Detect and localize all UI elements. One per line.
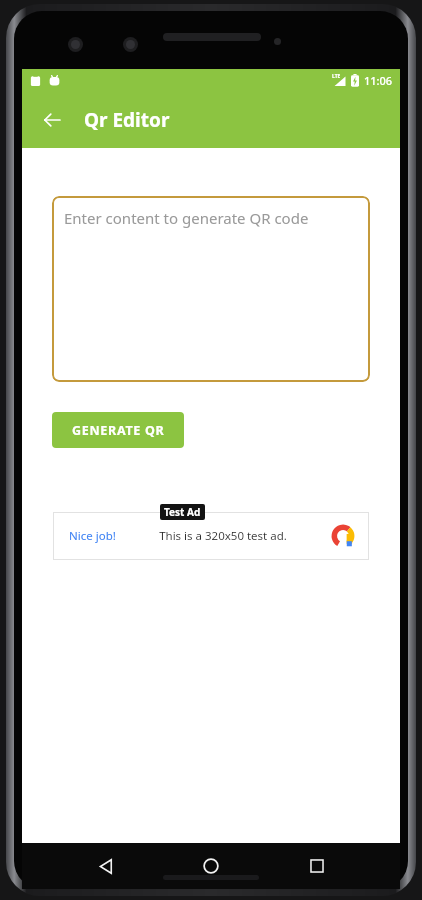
staticText: GENERATE QR — [72, 422, 165, 439]
staticText: Test Ad — [164, 505, 201, 519]
button[interactable]: GENERATE QR — [52, 412, 184, 448]
button[interactable]: Recent apps — [295, 844, 339, 888]
staticText: Qr Editor — [84, 107, 170, 133]
staticText: LTE — [332, 73, 341, 80]
staticText: This is a 320x50 test ad. — [159, 528, 287, 544]
staticText: Enter content to generate QR code — [64, 208, 309, 228]
button[interactable]: Enter content to generate QR code — [52, 196, 370, 382]
button[interactable]: Nice job! — [53, 512, 369, 560]
button[interactable]: Back — [32, 100, 72, 140]
staticText: Nice job! — [69, 528, 116, 544]
button[interactable]: Back — [84, 844, 128, 888]
staticText: 11:06 — [364, 73, 393, 88]
button[interactable]: Home — [189, 844, 233, 888]
